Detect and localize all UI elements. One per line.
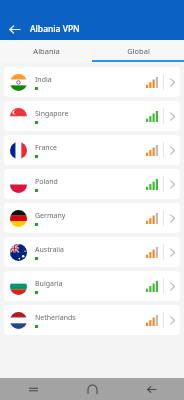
button[interactable]: Bulgaria xyxy=(4,271,180,301)
staticText: Albania VPN xyxy=(30,23,80,35)
button[interactable]: Singapore xyxy=(4,101,180,131)
button[interactable]: Recents xyxy=(24,380,42,398)
staticText: India xyxy=(35,75,52,85)
staticText: France xyxy=(35,143,57,153)
button[interactable]: Australia xyxy=(4,237,180,267)
staticText: Albania xyxy=(33,46,60,56)
button[interactable]: Back xyxy=(142,380,160,398)
staticText: Bulgaria xyxy=(35,279,63,289)
button[interactable]: France xyxy=(4,135,180,165)
staticText: Singapore xyxy=(35,109,69,119)
staticText: Australia xyxy=(35,245,64,255)
staticText: Netherlands xyxy=(35,313,76,323)
staticText: Germany xyxy=(35,211,66,221)
button[interactable]: Global xyxy=(92,40,184,62)
button[interactable]: India xyxy=(4,67,180,97)
button[interactable]: Albania xyxy=(0,40,92,62)
staticText: Poland xyxy=(35,177,58,187)
button[interactable]: Back xyxy=(6,21,22,37)
button[interactable]: Home xyxy=(83,380,101,398)
button[interactable]: Netherlands xyxy=(4,305,180,335)
button[interactable]: Germany xyxy=(4,203,180,233)
button[interactable]: Poland xyxy=(4,169,180,199)
staticText: Global xyxy=(127,46,150,56)
